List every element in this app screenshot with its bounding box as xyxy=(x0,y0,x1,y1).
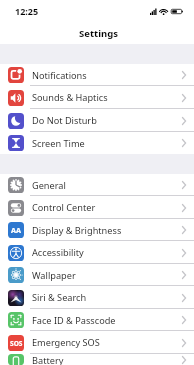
button[interactable]: Screen Time xyxy=(0,132,194,154)
staticText: Control Center xyxy=(32,201,96,214)
button[interactable]: Notifications xyxy=(0,64,194,86)
button[interactable]: Emergency SOS xyxy=(0,331,194,354)
staticText: Wallpaper xyxy=(32,269,76,282)
other: Siri & Search xyxy=(8,290,24,306)
other: Control Center xyxy=(8,200,24,216)
staticText: Notifications xyxy=(32,69,87,82)
staticText: Do Not Disturb xyxy=(32,114,97,127)
other: Sounds xyxy=(8,90,24,106)
other: General xyxy=(8,177,24,193)
other: Notifications xyxy=(8,67,24,83)
other: Face ID & Passcode xyxy=(8,312,24,328)
button[interactable]: Battery xyxy=(0,354,194,365)
button[interactable]: Wallpaper xyxy=(0,264,194,286)
staticText: Face ID & Passcode xyxy=(32,314,116,327)
button[interactable]: General xyxy=(0,174,194,196)
button[interactable]: Sounds xyxy=(0,86,194,109)
other: Display & Brightness xyxy=(8,222,24,238)
button[interactable]: Control Center xyxy=(0,196,194,219)
other: Accessibility xyxy=(8,245,24,261)
other: Emergency SOS xyxy=(8,335,24,351)
staticText: Sounds & Haptics xyxy=(32,91,108,104)
other: Wallpaper xyxy=(8,267,24,283)
staticText: AA xyxy=(11,225,21,235)
staticText: Display & Brightness xyxy=(32,224,122,237)
staticText: Settings xyxy=(79,27,118,40)
button[interactable]: Siri & Search xyxy=(0,286,194,309)
button[interactable]: Display & Brightness xyxy=(0,219,194,241)
staticText: General xyxy=(32,179,66,192)
button[interactable]: Face ID & Passcode xyxy=(0,309,194,331)
other: Battery xyxy=(8,354,24,365)
staticText: Screen Time xyxy=(32,137,85,150)
button[interactable]: Accessibility xyxy=(0,241,194,264)
button[interactable]: Do Not Disturb xyxy=(0,109,194,132)
staticText: Emergency SOS xyxy=(32,336,100,349)
other: Screen Time xyxy=(8,135,24,151)
staticText: SOS xyxy=(10,339,23,348)
other: Do Not Disturb xyxy=(8,113,24,129)
staticText: Siri & Search xyxy=(32,291,87,304)
staticText: Accessibility xyxy=(32,246,84,259)
staticText: Battery xyxy=(32,354,64,365)
staticText: 12:25 xyxy=(15,5,39,17)
